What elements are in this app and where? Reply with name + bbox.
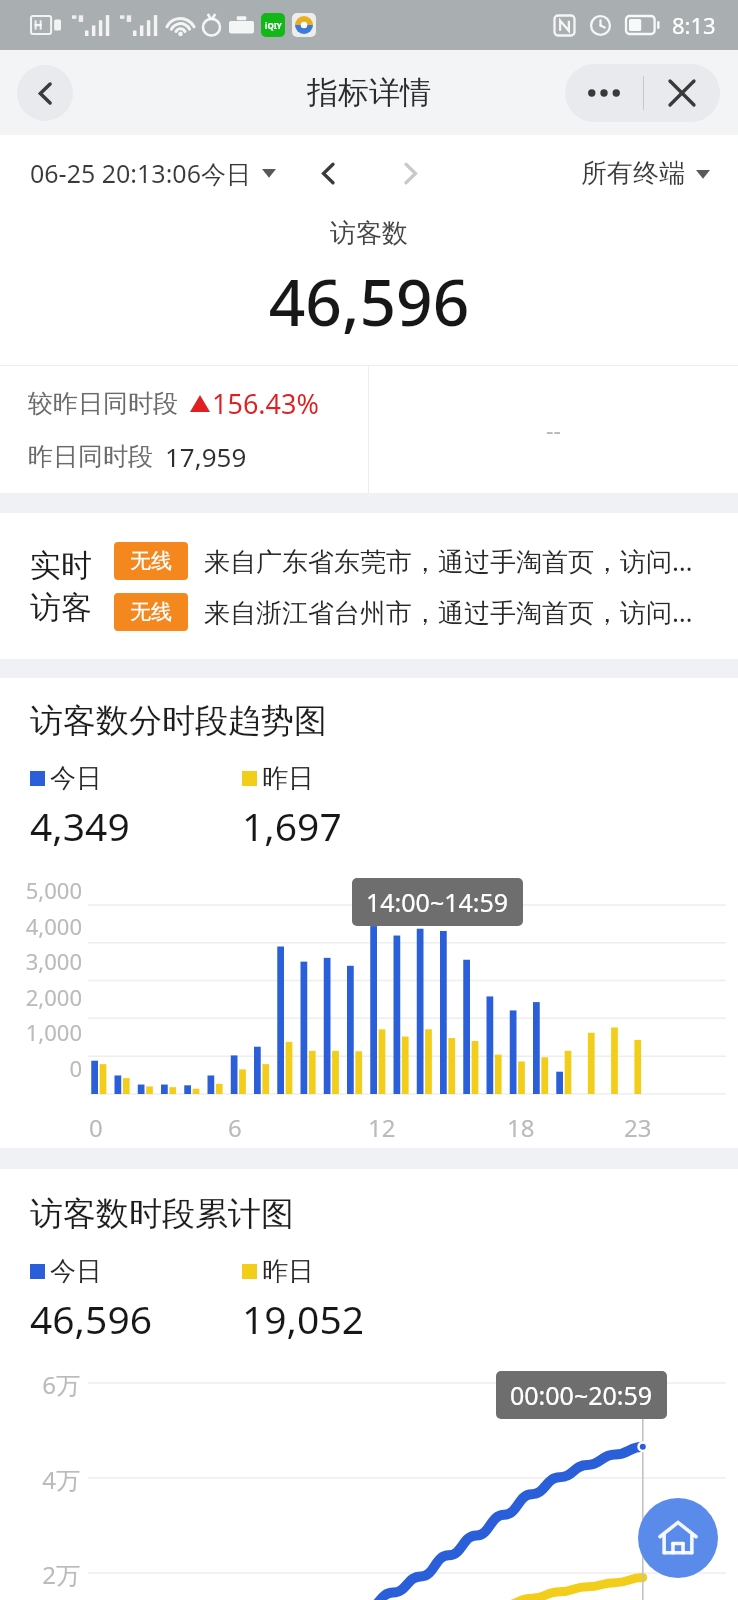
staticText: 1,000 [0, 1017, 82, 1047]
staticText: 所有终端 [581, 157, 685, 190]
staticText: 来自广东省东莞市，通过手淘首页，访问… [204, 543, 693, 579]
staticText: 指标详情 [307, 73, 431, 112]
staticText: 实时 [30, 546, 92, 585]
staticText: 0 [0, 1053, 82, 1083]
staticText: 46,596 [30, 1292, 152, 1345]
staticText: 0 [89, 1111, 103, 1144]
staticText: 访客 [30, 588, 92, 627]
staticText: 无线 [130, 599, 172, 625]
staticText: 6万 [0, 1368, 80, 1401]
staticText: 8:13 [672, 10, 716, 40]
staticText: 2万 [0, 1558, 80, 1591]
staticText: 访客数分时段趋势图 [30, 700, 327, 742]
staticText: 17,959 [165, 439, 247, 474]
staticText: 4万 [0, 1463, 80, 1496]
staticText: 访客数时段累计图 [30, 1193, 294, 1235]
staticText: 23 [624, 1111, 652, 1144]
staticText: 今日 [50, 1255, 102, 1288]
staticText: 12 [368, 1111, 396, 1144]
button[interactable]: Next [381, 144, 439, 202]
staticText: 18 [507, 1111, 535, 1144]
staticText: 较昨日同时段 [28, 388, 178, 419]
staticText: 19,052 [242, 1292, 364, 1345]
staticText: 访客数 [0, 217, 738, 250]
staticText: 2,000 [0, 982, 82, 1012]
button[interactable]: 所有终端 [581, 157, 710, 190]
button[interactable]: 无线 [114, 542, 693, 580]
staticText: 4,349 [30, 799, 130, 852]
staticText: -- [546, 414, 561, 445]
button[interactable]: Back [17, 65, 73, 121]
staticText: iQIY [265, 20, 282, 31]
staticText: 3,000 [0, 946, 82, 976]
staticText: 6 [228, 1111, 242, 1144]
staticText: 06-25 20:13:06今日 [30, 156, 251, 190]
staticText: 昨日 [262, 762, 314, 795]
staticText: 14:00~14:59 [366, 885, 509, 919]
button[interactable]: Previous [299, 144, 357, 202]
staticText: 00:00~20:59 [510, 1378, 653, 1412]
staticText: 今日 [50, 762, 102, 795]
staticText: 46,596 [0, 258, 738, 345]
staticText: 无线 [130, 548, 172, 574]
button[interactable]: Close [644, 64, 720, 122]
button[interactable]: Home [638, 1498, 718, 1578]
staticText: 4,000 [0, 911, 82, 941]
staticText: 5,000 [0, 875, 82, 905]
staticText: 昨日 [262, 1255, 314, 1288]
staticText: 1,697 [242, 799, 342, 852]
button[interactable]: More options [565, 64, 643, 122]
staticText: 来自浙江省台州市，通过手淘首页，访问… [204, 594, 693, 630]
staticText: 昨日同时段 [28, 441, 153, 472]
button[interactable]: 无线 [114, 593, 693, 631]
staticText: 156.43% [212, 385, 319, 422]
button[interactable]: 06-25 20:13:06今日 [30, 156, 276, 190]
